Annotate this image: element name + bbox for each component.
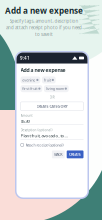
staticText: CREATE — [69, 152, 81, 157]
button[interactable]: living room — [44, 85, 69, 92]
button[interactable]: CREATE — [67, 150, 83, 158]
staticText: Description (optional) — [20, 128, 52, 132]
staticText: 45.30 — [20, 118, 29, 124]
staticText: 9:41 — [20, 55, 30, 61]
staticText: and attach receipt photo if you need — [6, 25, 82, 31]
staticText: OR — [49, 95, 54, 99]
button[interactable]: evening — [20, 76, 40, 83]
staticText: Add a new expense — [20, 66, 65, 73]
staticText: Amount — [20, 114, 32, 118]
staticText: to save it — [35, 31, 53, 37]
staticText: CREATE CATEGORY — [36, 104, 67, 109]
staticText: Add a new expense — [5, 5, 83, 16]
staticText: living room — [46, 86, 64, 91]
staticText: evening — [22, 77, 35, 82]
staticText: Plant fruit, avocado, to… — [20, 133, 67, 138]
button[interactable]: CREATE CATEGORY — [20, 102, 83, 111]
staticText: Specify tags, amount, description — [9, 18, 78, 24]
staticText: BACK — [54, 152, 62, 157]
button[interactable]: first fruit — [20, 85, 42, 92]
staticText: Attach receipt (optional) — [25, 142, 63, 147]
staticText: fruit — [44, 77, 51, 82]
button[interactable]: fruit — [42, 76, 56, 83]
staticText: first fruit — [22, 86, 37, 91]
button[interactable]: BACK — [52, 150, 65, 158]
